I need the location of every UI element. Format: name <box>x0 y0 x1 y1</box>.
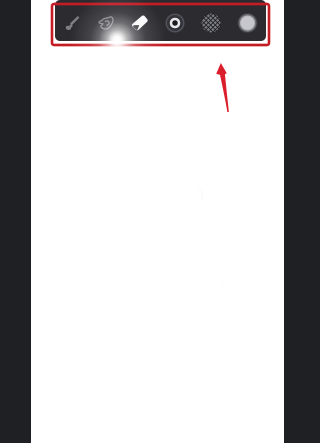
button[interactable]: Brush size <box>157 0 193 41</box>
button[interactable]: Paintbrush <box>55 0 89 41</box>
button[interactable]: Eraser <box>122 0 157 41</box>
button[interactable]: Opacity <box>193 0 229 41</box>
button[interactable]: Smudge <box>89 0 122 41</box>
button[interactable]: Colour <box>229 0 266 41</box>
